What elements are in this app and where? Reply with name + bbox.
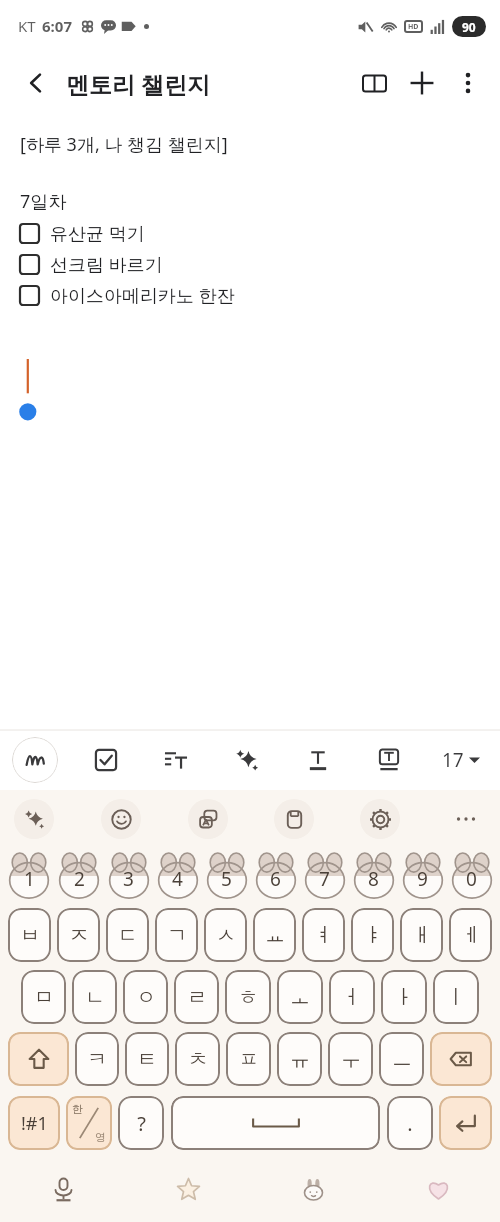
button[interactable]: 6 <box>251 851 300 901</box>
button[interactable]: ㅑ <box>351 908 394 962</box>
button[interactable]: More <box>446 799 486 839</box>
staticText: ㅜ <box>341 1047 361 1072</box>
staticText: 5 <box>221 866 232 892</box>
staticText: ㅛ <box>265 923 285 948</box>
button[interactable]: ㅋ <box>75 1032 119 1086</box>
staticText: 멘토리 챌린지 <box>66 68 210 99</box>
staticText: 0 <box>466 866 477 892</box>
button[interactable]: ㅈ <box>57 908 100 962</box>
button[interactable]: ㅎ <box>225 970 271 1024</box>
button[interactable]: ㅅ <box>204 908 247 962</box>
button[interactable]: 2 <box>54 851 104 901</box>
button[interactable]: ㄷ <box>106 908 149 962</box>
button[interactable]: ㅏ <box>381 970 427 1024</box>
staticText: ㅍ <box>239 1047 259 1072</box>
button[interactable]: Paragraph style <box>154 738 198 782</box>
staticText: ㅠ <box>290 1047 310 1072</box>
staticText: KT <box>18 16 36 36</box>
button[interactable]: ㅐ <box>400 908 443 962</box>
button[interactable]: ㅕ <box>302 908 345 962</box>
staticText: ㅡ <box>392 1047 412 1072</box>
button[interactable]: Add <box>398 59 446 107</box>
button[interactable]: Hearts <box>416 1167 460 1211</box>
staticText: 한 <box>72 1102 83 1116</box>
staticText: 4 <box>172 866 183 892</box>
button[interactable]: 유산균 먹기 <box>20 218 500 249</box>
button[interactable]: 5 <box>202 851 251 901</box>
button[interactable]: ㅜ <box>328 1032 373 1086</box>
staticText: 영 <box>95 1130 106 1144</box>
button[interactable]: Favorites <box>166 1167 210 1211</box>
button[interactable]: ㅔ <box>449 908 492 962</box>
staticText: HD <box>408 22 419 32</box>
button[interactable]: ㅂ <box>8 908 51 962</box>
button[interactable]: Shift <box>8 1032 69 1086</box>
button[interactable]: Korean English toggle <box>66 1096 112 1150</box>
button[interactable]: !#1 <box>8 1096 60 1150</box>
staticText: ㅓ <box>342 985 362 1010</box>
button[interactable]: Enter <box>439 1096 492 1150</box>
staticText: ㅌ <box>137 1047 157 1072</box>
button[interactable]: Back <box>14 61 58 105</box>
staticText: ㅈ <box>69 923 89 948</box>
button[interactable]: ㄹ <box>174 970 219 1024</box>
button[interactable]: 8 <box>349 851 398 901</box>
button[interactable]: 선크림 바르기 <box>20 249 500 280</box>
button[interactable]: Text box <box>367 738 411 782</box>
button[interactable]: Clipboard <box>274 799 314 839</box>
button[interactable]: 7 <box>300 851 349 901</box>
button[interactable]: Theme <box>291 1167 335 1211</box>
staticText: 90 <box>462 19 476 35</box>
button[interactable]: Checklist <box>84 738 128 782</box>
button[interactable]: 17 <box>438 741 484 779</box>
button[interactable]: Voice input <box>41 1167 85 1211</box>
staticText: 1 <box>24 866 35 892</box>
button[interactable]: ㅇ <box>123 970 168 1024</box>
staticText: ㄹ <box>187 985 207 1010</box>
button[interactable]: ? <box>118 1096 164 1150</box>
staticText: ㅗ <box>290 985 310 1010</box>
staticText: ㅐ <box>412 923 432 948</box>
button[interactable]: ㅓ <box>329 970 375 1024</box>
button[interactable]: Reading mode <box>350 59 398 107</box>
button[interactable]: 4 <box>153 851 202 901</box>
button[interactable]: ㄴ <box>72 970 117 1024</box>
button[interactable]: ㄱ <box>155 908 198 962</box>
staticText: 7 <box>319 866 330 892</box>
staticText: 9 <box>417 866 428 892</box>
button[interactable]: More options <box>446 61 490 105</box>
button[interactable]: 아이스아메리카노 한잔 <box>20 280 500 311</box>
button[interactable]: ㅊ <box>175 1032 220 1086</box>
staticText: ㄱ <box>167 923 187 948</box>
button[interactable]: Emoji <box>101 799 141 839</box>
button[interactable]: ㅁ <box>21 970 66 1024</box>
button[interactable]: 3 <box>104 851 153 901</box>
staticText: ㅎ <box>238 985 258 1010</box>
button[interactable]: 1 <box>4 851 54 901</box>
button[interactable]: Translate <box>188 799 228 839</box>
button[interactable]: ㅛ <box>253 908 296 962</box>
button[interactable]: . <box>387 1096 433 1150</box>
button[interactable]: 0 <box>447 851 496 901</box>
button[interactable]: Handwriting <box>12 737 58 783</box>
button[interactable]: 9 <box>398 851 447 901</box>
button[interactable]: Space <box>171 1096 380 1150</box>
button[interactable]: ㅍ <box>226 1032 271 1086</box>
button[interactable]: ㅌ <box>125 1032 169 1086</box>
button[interactable]: ㅠ <box>277 1032 322 1086</box>
staticText: 아이스아메리카노 한잔 <box>50 283 235 308</box>
staticText: 7일차 <box>20 189 67 214</box>
button[interactable]: Text style <box>296 738 340 782</box>
button[interactable]: ㅗ <box>277 970 323 1024</box>
button[interactable]: Settings <box>360 799 400 839</box>
button[interactable]: AI suggestions <box>14 799 54 839</box>
button[interactable]: AI assist <box>225 738 269 782</box>
button[interactable]: Backspace <box>430 1032 492 1086</box>
button[interactable]: ㅣ <box>433 970 479 1024</box>
button[interactable]: ㅡ <box>379 1032 424 1086</box>
staticText: [하루 3개, 나 챙김 챌린지] <box>20 132 228 157</box>
staticText: ㅣ <box>446 985 466 1010</box>
staticText: ㅑ <box>363 923 383 948</box>
staticText: 2 <box>74 866 85 892</box>
staticText: ㅕ <box>314 923 334 948</box>
